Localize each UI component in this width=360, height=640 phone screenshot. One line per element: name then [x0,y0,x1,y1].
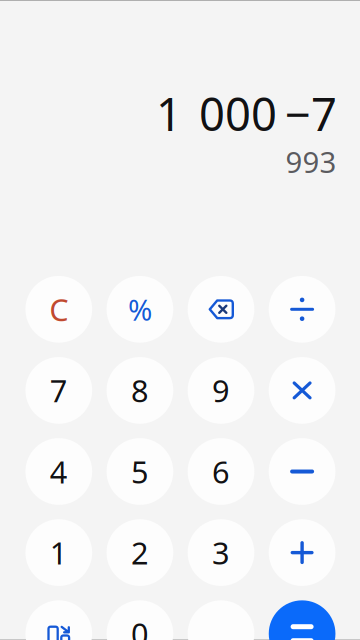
staticText: 4 [50,451,68,492]
staticText: 0 [131,613,149,640]
staticText: 1 000 −​7 [156,83,337,143]
button[interactable]: Multiply [269,357,335,424]
button[interactable]: 4 [25,438,92,505]
button[interactable]: 5 [106,438,173,505]
button[interactable]: C [25,276,92,343]
staticText: 6 [212,451,230,492]
staticText: % [128,290,152,329]
staticText: C [49,289,68,330]
staticText: 5 [131,451,149,492]
button[interactable]: 6 [188,438,254,505]
staticText: 2 [131,532,149,573]
button[interactable]: Divide [269,276,335,343]
button[interactable]: 1 [25,519,92,586]
button[interactable]: 2 [106,519,173,586]
staticText: 993 [285,142,336,181]
button[interactable]: 7 [25,357,92,424]
button[interactable]: 8 [106,357,173,424]
staticText: 1 [50,532,68,573]
button[interactable]: Minus [269,438,335,505]
button[interactable]: Backspace [188,276,254,343]
button[interactable]: Plus [269,519,335,586]
button[interactable]: 0 [106,600,173,640]
button[interactable]: 9 [188,357,254,424]
staticText: 8 [131,370,149,411]
button[interactable]: , [188,600,254,640]
button[interactable]: 3 [188,519,254,586]
staticText: 7 [50,370,68,411]
button[interactable]: Unit converter [25,600,92,640]
button[interactable]: % [106,276,173,343]
button[interactable]: Equals [269,600,335,640]
staticText: 3 [212,532,230,573]
staticText: 9 [212,370,230,411]
